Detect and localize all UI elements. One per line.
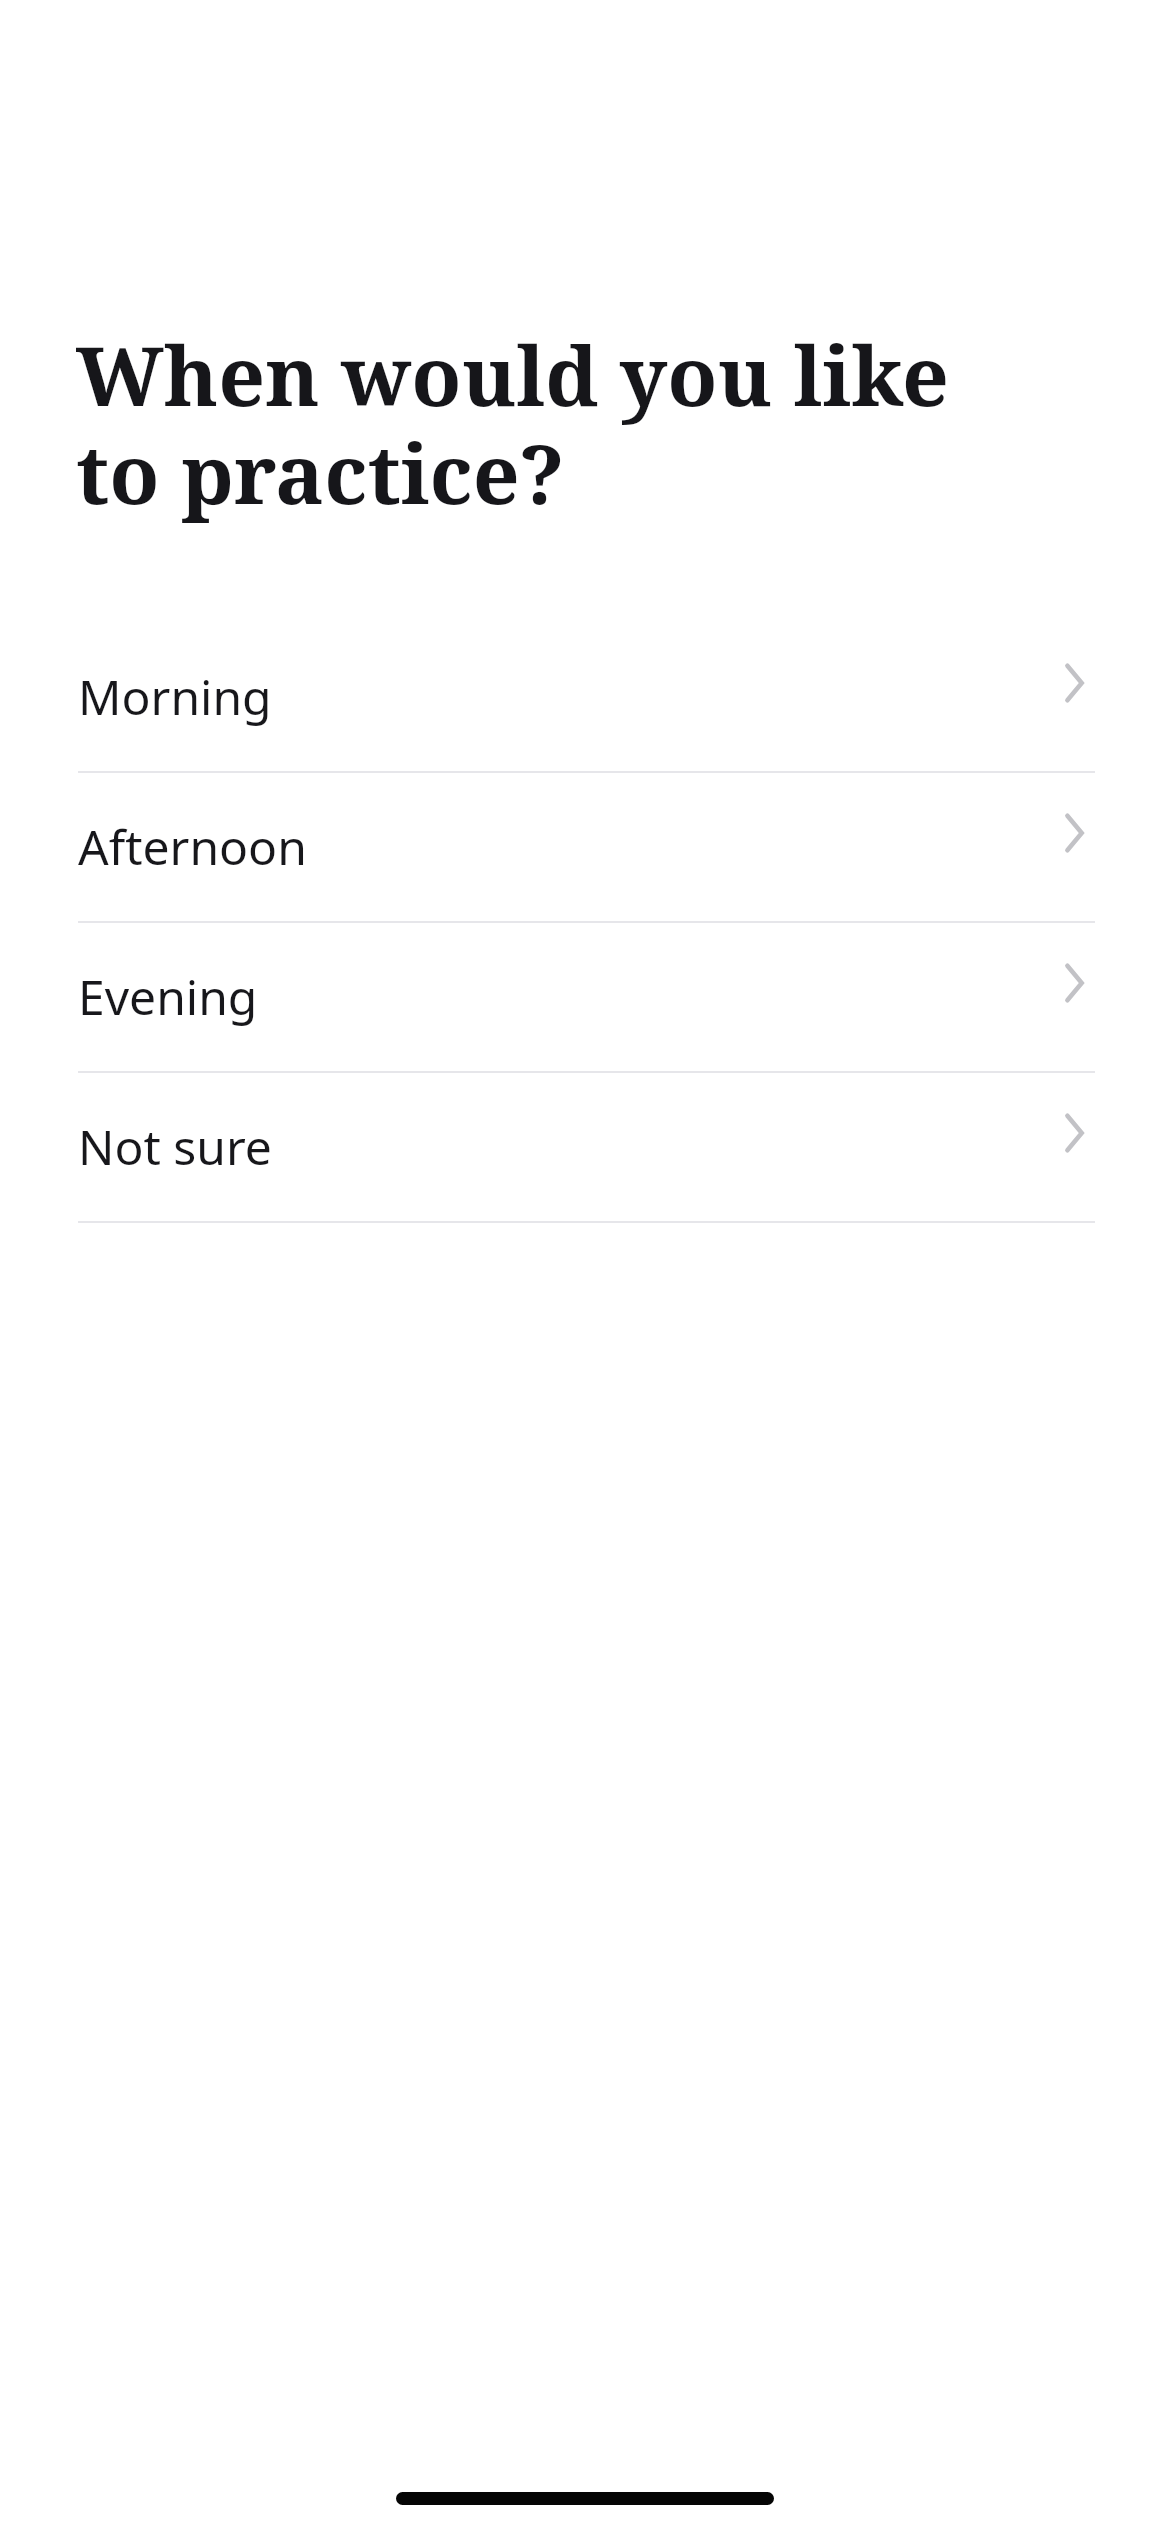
staticText: Not sure	[78, 1114, 272, 1179]
other: Evening	[1052, 959, 1100, 1007]
staticText: Afternoon	[78, 814, 307, 879]
button[interactable]: Evening	[0, 923, 1170, 1073]
other: Morning	[1052, 659, 1100, 707]
button[interactable]: Morning	[0, 623, 1170, 773]
button[interactable]: Afternoon	[0, 773, 1170, 923]
other: Afternoon	[1052, 809, 1100, 857]
staticText: When would you like to practice?	[76, 318, 1028, 528]
other: Not sure	[1052, 1109, 1100, 1157]
button[interactable]: Not sure	[0, 1073, 1170, 1223]
staticText: Morning	[78, 664, 272, 729]
staticText: Evening	[78, 964, 258, 1029]
